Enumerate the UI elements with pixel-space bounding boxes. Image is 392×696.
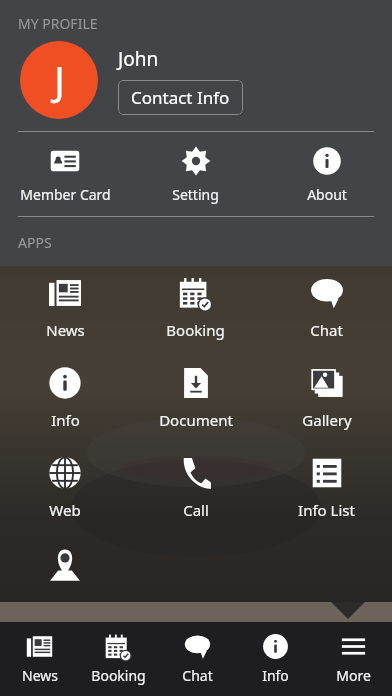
staticText: Call: [183, 500, 209, 520]
staticText: Booking: [166, 320, 225, 340]
button[interactable]: Info: [236, 622, 314, 696]
button[interactable]: Booking: [130, 266, 261, 356]
staticText: More: [336, 666, 371, 685]
staticText: APPS: [18, 233, 52, 252]
staticText: Gallery: [302, 410, 352, 430]
staticText: Info: [51, 410, 80, 430]
staticText: Booking: [91, 666, 146, 685]
button[interactable]: Contact Info: [118, 80, 243, 115]
button[interactable]: Chat: [158, 622, 236, 696]
button[interactable]: Document: [130, 356, 261, 446]
staticText: Info: [262, 666, 289, 685]
staticText: Web: [49, 500, 81, 520]
button[interactable]: News: [0, 622, 79, 696]
button[interactable]: More: [314, 622, 392, 696]
staticText: News: [22, 666, 58, 685]
staticText: J: [54, 53, 65, 107]
staticText: John: [118, 46, 159, 72]
staticText: Setting: [172, 185, 219, 204]
staticText: Member Card: [20, 185, 111, 204]
staticText: MY PROFILE: [18, 14, 98, 33]
button[interactable]: Location: [0, 536, 130, 622]
button[interactable]: Call: [130, 446, 261, 536]
staticText: Contact Info: [131, 86, 230, 109]
button[interactable]: About: [261, 146, 392, 204]
staticText: News: [46, 320, 85, 340]
staticText: Document: [159, 410, 233, 430]
button[interactable]: Web: [0, 446, 130, 536]
button[interactable]: Info: [0, 356, 130, 446]
staticText: About: [307, 185, 347, 204]
button[interactable]: Gallery: [261, 356, 392, 446]
staticText: Chat: [182, 666, 213, 685]
staticText: Info List: [298, 500, 355, 520]
button[interactable]: Chat: [261, 266, 392, 356]
button[interactable]: News: [0, 266, 130, 356]
staticText: Chat: [310, 320, 343, 340]
button[interactable]: Info List: [261, 446, 392, 536]
button[interactable]: Booking: [79, 622, 158, 696]
button[interactable]: Member Card: [0, 146, 130, 204]
button[interactable]: Profile avatar: [20, 41, 98, 119]
button[interactable]: Setting: [130, 146, 261, 204]
